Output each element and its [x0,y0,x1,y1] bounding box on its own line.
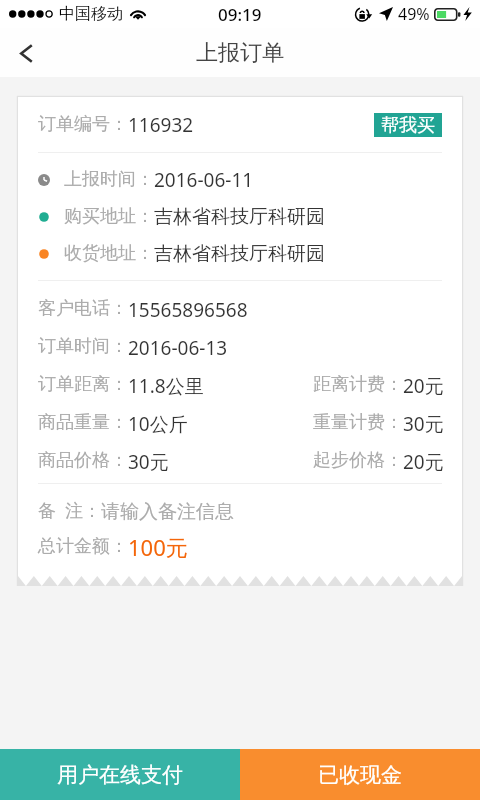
staticText: 订单时间： [38,335,128,358]
staticText: 注： [65,500,101,523]
staticText: 收货地址： [64,242,154,265]
staticText: 商品重量： [38,411,128,434]
staticText: 距离计费： [313,373,403,396]
staticText: 用户在线支付 [57,762,183,788]
staticText: 11.8公里 [128,373,204,399]
staticText: 09:19 [218,3,262,26]
staticText: 总计金额： [38,535,128,558]
staticText: 订单距离： [38,373,128,396]
staticText: 吉林省科技厅科研园 [154,205,325,229]
button[interactable]: 用户在线支付 [0,749,240,800]
staticText: 购买地址： [64,205,154,228]
staticText: 30元 [403,411,444,437]
staticText: 帮我买 [381,114,435,137]
staticText: 15565896568 [128,297,248,323]
staticText: 上报时间： [64,168,154,191]
staticText: 起步价格： [313,449,403,472]
staticText: 商品价格： [38,449,128,472]
staticText: 上报订单 [196,39,284,67]
staticText: 订单编号： [38,113,128,136]
button[interactable]: Back [0,28,52,78]
staticText: 备 [38,500,56,523]
staticText: 116932 [128,112,194,138]
staticText: 吉林省科技厅科研园 [154,242,325,266]
staticText: 10公斤 [128,411,188,437]
staticText: 20元 [403,449,444,475]
staticText: 20元 [403,373,444,399]
staticText: 2016-06-13 [128,335,228,361]
button[interactable]: 已收现金 [240,749,480,800]
staticText: 100元 [128,532,188,562]
staticText: 49% [398,3,430,25]
button[interactable]: 帮我买 [374,113,442,137]
staticText: 已收现金 [318,762,402,788]
staticText: 中国移动 [59,4,123,24]
staticText: 客户电话： [38,297,128,320]
staticText: 请输入备注信息 [101,500,234,524]
staticText: 2016-06-11 [154,167,254,193]
staticText: 重量计费： [313,411,403,434]
staticText: 30元 [128,449,169,475]
